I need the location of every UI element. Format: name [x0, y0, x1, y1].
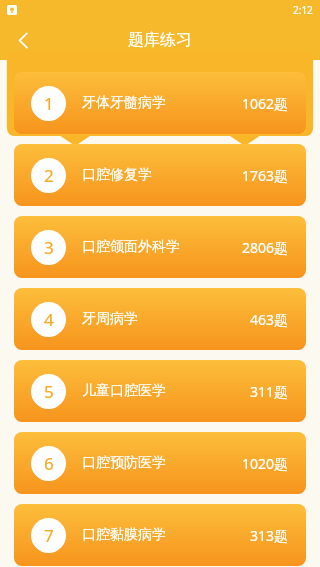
button[interactable]: 6: [14, 432, 306, 494]
staticText: 口腔修复学: [82, 166, 152, 184]
staticText: 口腔颌面外科学: [82, 238, 180, 256]
staticText: 儿童口腔医学: [82, 382, 166, 400]
button[interactable]: 1: [14, 72, 306, 134]
staticText: 313题: [250, 526, 289, 545]
staticText: 7: [44, 524, 54, 547]
button[interactable]: 7: [14, 504, 306, 566]
staticText: 5: [44, 380, 54, 403]
staticText: 口腔预防医学: [82, 454, 166, 472]
staticText: 1: [44, 92, 54, 115]
staticText: 311题: [250, 382, 289, 401]
button[interactable]: 5: [14, 360, 306, 422]
staticText: 牙周病学: [82, 310, 138, 328]
staticText: 1062题: [242, 94, 289, 113]
staticText: 牙体牙髓病学: [82, 94, 166, 112]
staticText: 3: [44, 236, 54, 259]
button[interactable]: 2: [14, 144, 306, 206]
staticText: 4: [44, 308, 54, 331]
staticText: 1020题: [242, 454, 289, 473]
staticText: 1763题: [242, 166, 289, 185]
button[interactable]: 4: [14, 288, 306, 350]
staticText: 2:12: [293, 3, 313, 17]
button[interactable]: 3: [14, 216, 306, 278]
staticText: 题库练习: [128, 30, 192, 50]
button[interactable]: Back: [0, 20, 46, 60]
staticText: 463题: [250, 310, 289, 329]
staticText: 6: [44, 452, 54, 475]
staticText: 2: [44, 164, 54, 187]
staticText: 口腔黏膜病学: [82, 526, 166, 544]
staticText: 2806题: [242, 238, 289, 257]
